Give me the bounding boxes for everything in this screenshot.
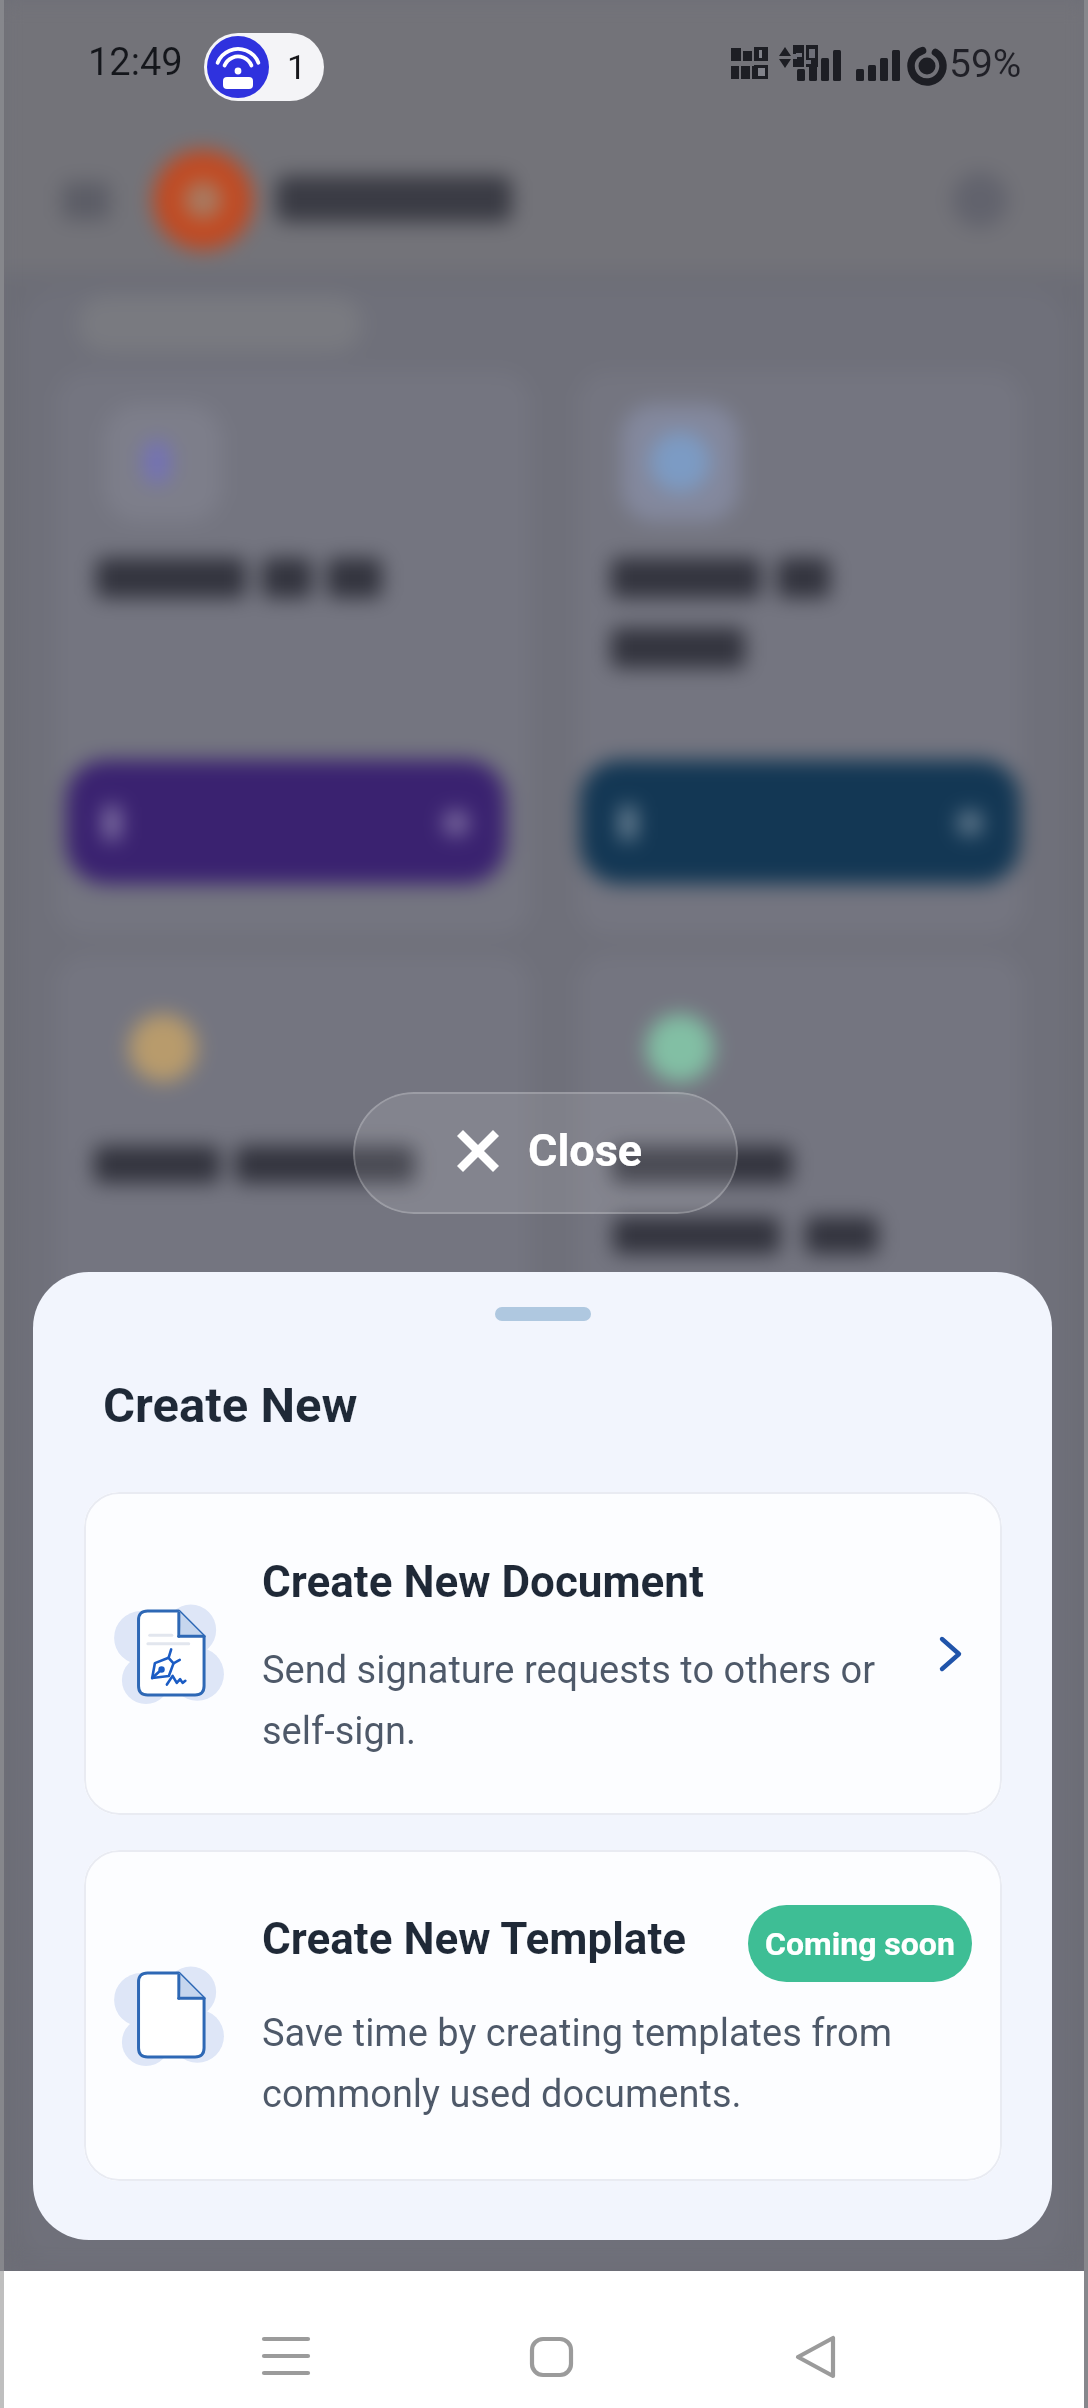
button[interactable]: Create New Template: [84, 1850, 1002, 2181]
staticText: 1: [287, 47, 307, 87]
staticText: Close: [528, 1124, 643, 1177]
button[interactable]: Close: [353, 1092, 738, 1214]
button[interactable]: Coming soon: [748, 1905, 972, 1982]
staticText: 59%: [949, 41, 1022, 87]
staticText: 12:49: [88, 40, 183, 85]
staticText: Create New Document: [262, 1556, 704, 1608]
staticText: Create New Template: [262, 1913, 687, 1965]
button[interactable]: Open Create New Document: [916, 1622, 980, 1686]
button[interactable]: Create New Document: [84, 1492, 1002, 1815]
button[interactable]: Recent apps: [234, 2290, 338, 2394]
button[interactable]: Back: [763, 2290, 867, 2394]
button[interactable]: Home: [499, 2290, 603, 2394]
staticText: Coming soon: [765, 1925, 955, 1963]
staticText: Send signature requests to others or sel…: [262, 1648, 876, 1753]
staticText: Save time by creating templates from com…: [262, 2011, 892, 2116]
staticText: Create New: [103, 1377, 358, 1434]
